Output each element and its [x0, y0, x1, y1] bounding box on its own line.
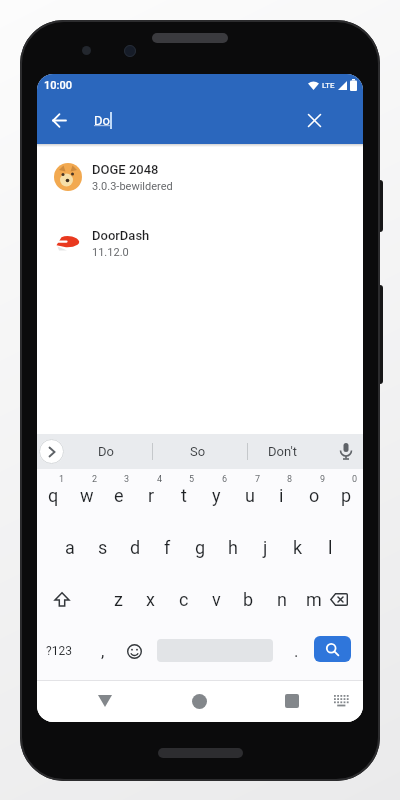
button[interactable]: j — [249, 521, 282, 573]
button[interactable] — [39, 439, 64, 464]
button[interactable]: d — [119, 521, 152, 573]
staticText: i — [279, 485, 284, 506]
button[interactable]: w — [70, 469, 103, 521]
button[interactable]: . — [280, 625, 312, 677]
button[interactable]: h — [216, 521, 249, 573]
button[interactable] — [118, 625, 150, 677]
button[interactable]: b — [232, 573, 265, 625]
button[interactable]: f — [151, 521, 184, 573]
staticText: LTE — [322, 81, 335, 90]
staticText: q — [48, 485, 59, 506]
button[interactable] — [314, 573, 363, 625]
button[interactable] — [179, 680, 219, 722]
staticText: Do — [94, 113, 110, 128]
button[interactable]: v — [200, 573, 233, 625]
staticText: 0 — [352, 474, 358, 485]
button[interactable]: s — [86, 521, 119, 573]
staticText: 9 — [320, 474, 326, 485]
staticText: So — [190, 444, 206, 459]
staticText: 8 — [287, 474, 293, 485]
staticText: g — [195, 537, 206, 558]
staticText: d — [130, 537, 141, 558]
staticText: w — [80, 485, 94, 506]
button[interactable]: y — [200, 469, 233, 521]
button[interactable]: DOGE 2048 — [37, 144, 363, 210]
staticText: ?123 — [46, 644, 72, 658]
staticText: l — [328, 537, 333, 558]
button[interactable] — [329, 434, 363, 469]
staticText: . — [294, 641, 299, 661]
staticText: z — [114, 589, 123, 610]
staticText: p — [341, 485, 352, 506]
staticText: Do — [98, 444, 114, 459]
staticText: y — [212, 485, 221, 506]
staticText: k — [293, 537, 303, 558]
staticText: e — [114, 485, 124, 506]
button[interactable]: n — [265, 573, 298, 625]
staticText: b — [243, 589, 254, 610]
staticText: 5 — [189, 474, 195, 485]
staticText: 1 — [59, 474, 65, 485]
button[interactable]: , — [80, 625, 126, 677]
staticText: n — [277, 589, 287, 610]
button[interactable] — [43, 104, 75, 136]
staticText: c — [179, 589, 189, 610]
staticText: 10:00 — [44, 79, 72, 92]
staticText: u — [245, 485, 255, 506]
button[interactable]: o — [298, 469, 331, 521]
button[interactable]: e — [102, 469, 135, 521]
staticText: Don't — [268, 444, 297, 459]
button[interactable]: i — [265, 469, 298, 521]
button[interactable]: u — [233, 469, 266, 521]
button[interactable] — [85, 680, 125, 722]
staticText: 2 — [92, 474, 98, 485]
button[interactable]: g — [184, 521, 217, 573]
staticText: h — [228, 537, 238, 558]
staticText: DOGE 2048 — [92, 162, 159, 177]
button[interactable] — [314, 636, 351, 662]
button[interactable] — [298, 104, 330, 136]
button[interactable] — [37, 573, 86, 625]
button[interactable]: m — [297, 573, 330, 625]
staticText: m — [306, 589, 322, 610]
staticText: DoorDash — [92, 228, 150, 243]
button[interactable]: k — [281, 521, 314, 573]
staticText: f — [164, 537, 171, 558]
button[interactable]: Don't — [249, 434, 315, 469]
button[interactable]: q — [37, 469, 70, 521]
staticText: a — [65, 537, 75, 558]
staticText: x — [146, 589, 155, 610]
staticText: j — [263, 537, 268, 558]
staticText: o — [309, 485, 320, 506]
staticText: 3 — [124, 474, 130, 485]
button[interactable]: x — [134, 573, 167, 625]
staticText: 3.0.3-bewildered — [92, 180, 173, 193]
button[interactable]: z — [102, 573, 135, 625]
staticText: r — [148, 485, 155, 506]
button[interactable] — [325, 680, 357, 722]
button[interactable]: t — [167, 469, 200, 521]
button[interactable]: DoorDash — [37, 210, 363, 276]
button[interactable]: Do — [73, 434, 139, 469]
staticText: t — [181, 485, 187, 506]
staticText: 4 — [157, 474, 163, 485]
staticText: 6 — [222, 474, 228, 485]
staticText: 7 — [255, 474, 261, 485]
button[interactable]: a — [53, 521, 86, 573]
staticText: s — [98, 537, 108, 558]
button[interactable]: l — [314, 521, 347, 573]
button[interactable]: c — [167, 573, 200, 625]
button[interactable]: ?123 — [37, 625, 80, 677]
button[interactable] — [272, 680, 312, 722]
staticText: , — [101, 641, 105, 661]
button[interactable]: r — [135, 469, 168, 521]
button[interactable]: p — [330, 469, 363, 521]
staticText: 11.12.0 — [92, 246, 129, 259]
staticText: v — [212, 589, 221, 610]
button[interactable]: So — [165, 434, 231, 469]
